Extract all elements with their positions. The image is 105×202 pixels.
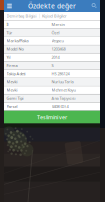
button[interactable]: Gemi Tipi: [4, 94, 100, 102]
button[interactable]: Parsel: [4, 102, 100, 111]
staticText: Özdekte değer: [28, 2, 76, 10]
staticText: Yıl: [6, 54, 10, 60]
staticText: Nurluu Tarla: [51, 79, 73, 84]
button[interactable]: Yıl: [4, 53, 100, 61]
staticText: 2014: [51, 54, 59, 60]
staticText: Tür: [6, 30, 12, 35]
staticText: Mehmet Koyu: [51, 87, 75, 93]
staticText: Mevki: [6, 87, 17, 93]
staticText: HS 286124: [51, 71, 69, 76]
button[interactable]: Menu: [4, 0, 15, 12]
button[interactable]: Kişisel Bilgiler: [39, 12, 69, 20]
staticText: Mevki: [6, 79, 17, 84]
button[interactable]: Mevki: [4, 78, 100, 86]
button[interactable]: İl: [4, 20, 100, 29]
staticText: S: [51, 63, 53, 68]
button[interactable]: Teslimini ver: [4, 111, 100, 124]
staticText: Gemi Tipi: [6, 95, 23, 101]
staticText: Ana Taşıyıcısı: [51, 95, 75, 101]
button[interactable]: Marka/Plaka: [4, 37, 100, 45]
staticText: Takip Adeti: [6, 71, 25, 76]
staticText: 3408 (D) 4: [51, 104, 68, 109]
staticText: Vegacu: [51, 38, 63, 43]
button[interactable]: Model No: [4, 45, 100, 53]
staticText: Kişisel Bilgiler: [42, 13, 67, 19]
staticText: Model No: [6, 46, 23, 52]
button[interactable]: Firma: [4, 61, 100, 70]
button[interactable]: Demirbaş Bilgisi: [4, 12, 39, 20]
staticText: 1203468: [51, 46, 65, 52]
staticText: Parsel: [6, 104, 17, 109]
staticText: Firma: [6, 63, 17, 68]
staticText: Teslimini ver: [37, 114, 67, 121]
button[interactable]: Takip Adeti: [4, 70, 100, 78]
button[interactable]: Mevki: [4, 86, 100, 94]
staticText: İl: [6, 22, 8, 27]
staticText: Mersin: [51, 22, 64, 27]
button[interactable]: Search: [89, 0, 100, 12]
staticText: Marka/Plaka: [6, 38, 28, 43]
staticText: Demirbaş Bilgisi: [6, 13, 36, 19]
button[interactable]: Tür: [4, 29, 100, 37]
staticText: Özel: [51, 30, 59, 35]
